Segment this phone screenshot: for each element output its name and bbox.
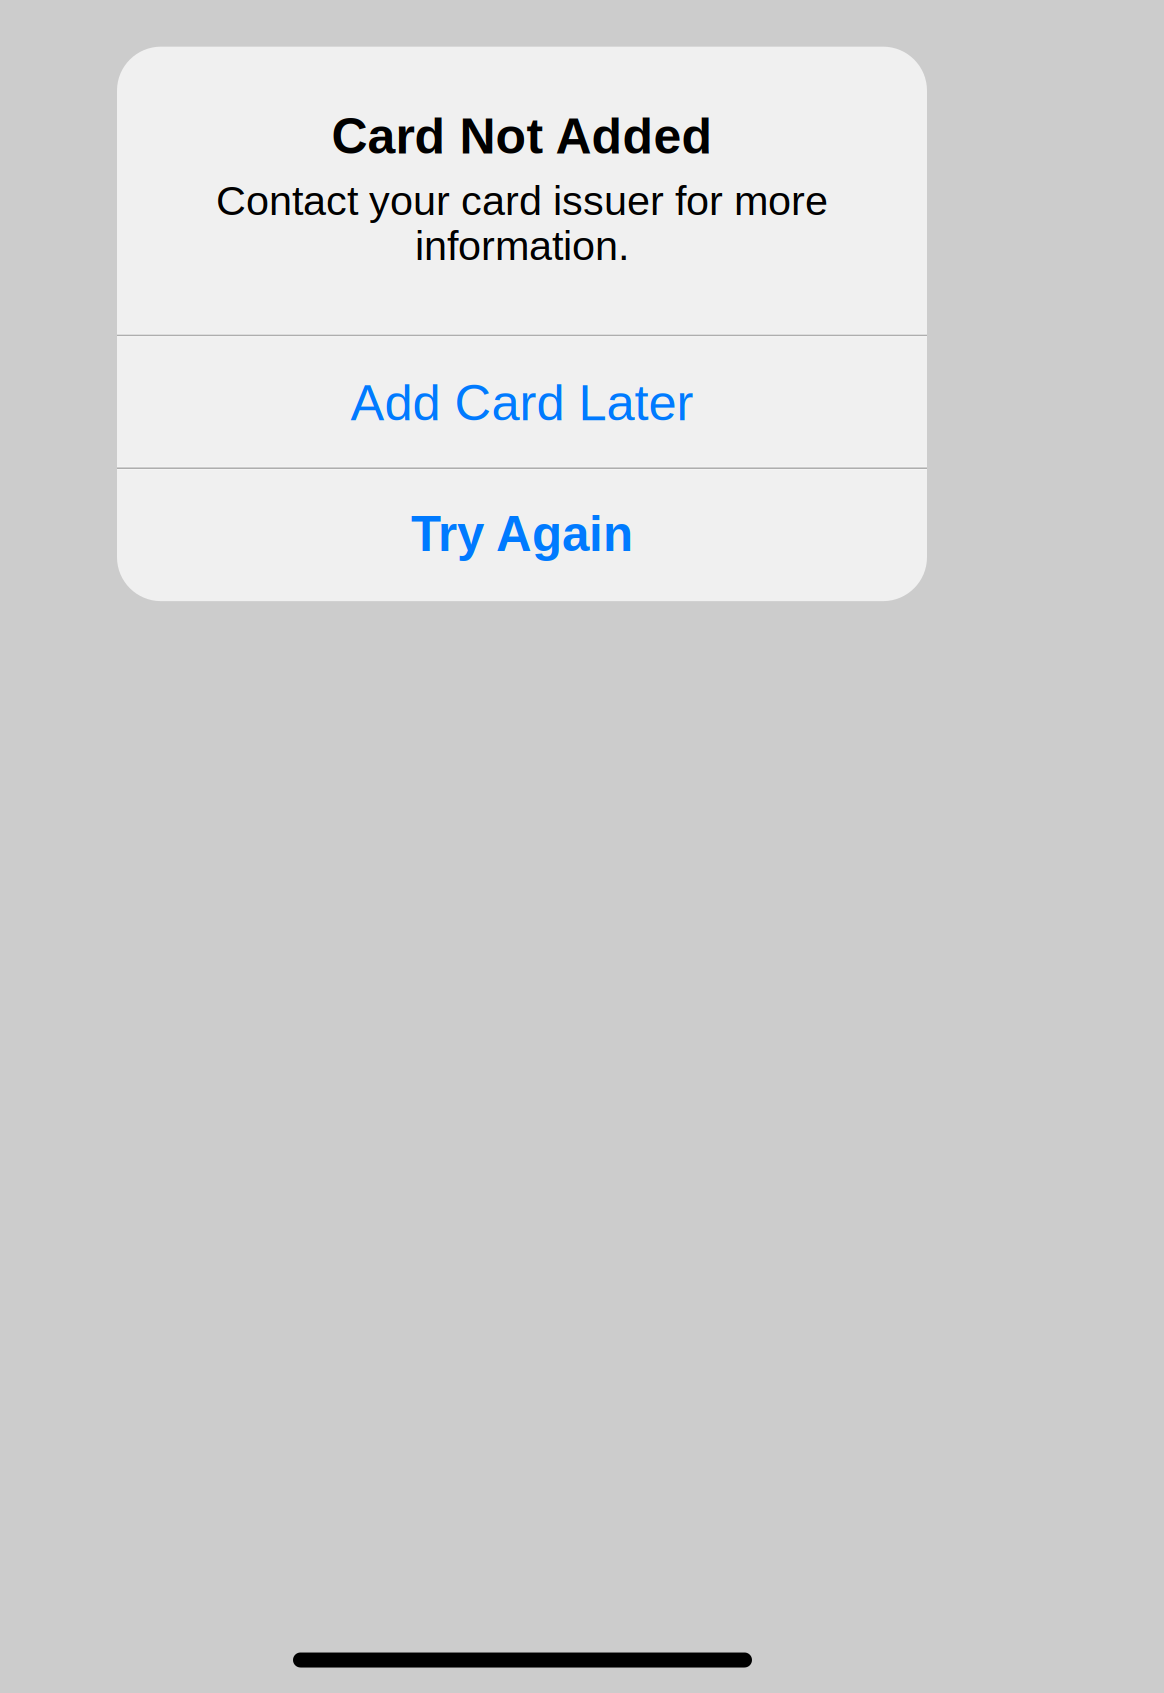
staticText: Contact your card issuer for more [216, 178, 828, 224]
staticText: Add Card Later [350, 375, 693, 431]
staticText: Try Again [411, 506, 633, 561]
staticText: information. [415, 223, 629, 269]
staticText: Card Not Added [331, 108, 712, 164]
button[interactable]: Add Card Later [117, 337, 927, 467]
button[interactable]: Try Again [117, 470, 927, 601]
